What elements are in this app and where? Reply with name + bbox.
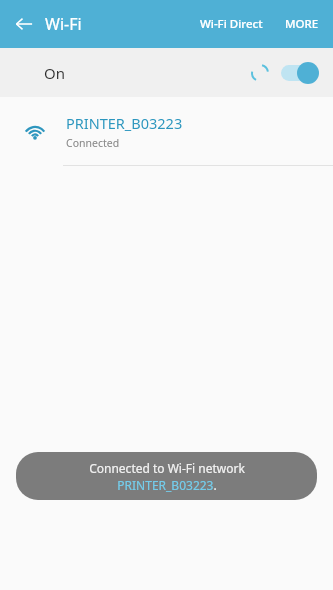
staticText: On [44,63,65,83]
button[interactable]: Wi-Fi toggle [281,62,319,84]
staticText: PRINTER_B03223. [117,477,217,493]
staticText: Wi-Fi [45,13,82,35]
staticText: MORE [285,16,319,32]
button[interactable]: On [0,48,333,97]
button[interactable]: MORE [281,10,323,38]
button[interactable]: PRINTER_B03223 [0,97,333,165]
button[interactable]: Back [8,8,40,40]
staticText: Connected [66,136,120,150]
button[interactable]: Wi-Fi Direct [196,10,267,38]
staticText: Connected to Wi-Fi network [89,460,245,476]
staticText: PRINTER_B03223 [66,113,183,133]
staticText: Wi-Fi Direct [200,16,263,32]
